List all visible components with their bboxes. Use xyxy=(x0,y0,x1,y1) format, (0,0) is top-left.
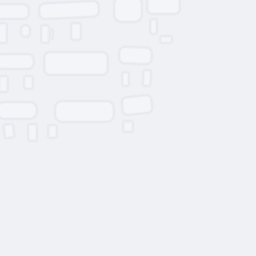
button[interactable]: Card 10 xyxy=(122,96,152,114)
button[interactable]: Card 2 xyxy=(39,2,99,18)
button[interactable]: Card 7 xyxy=(119,47,152,64)
button[interactable]: Card 1 xyxy=(0,4,29,19)
button[interactable]: Card 5 xyxy=(0,54,34,69)
button[interactable]: Card 3 xyxy=(114,0,142,22)
button[interactable]: Card 6 xyxy=(44,52,108,75)
button[interactable]: Card 4 xyxy=(147,0,180,14)
button[interactable]: Card 9 xyxy=(55,101,114,122)
button[interactable]: Card 8 xyxy=(0,102,37,119)
